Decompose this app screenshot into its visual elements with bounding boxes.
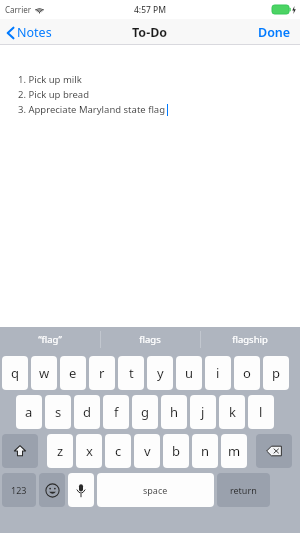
staticText: c [115,442,122,460]
staticText: 1. Pick up milk [18,73,82,86]
button[interactable]: Shift [2,434,38,468]
button[interactable]: y [147,356,173,390]
staticText: b [172,442,180,460]
staticText: j [201,403,205,421]
staticText: k [229,403,236,421]
staticText: “flag” [38,333,62,346]
staticText: d [83,403,91,421]
button[interactable]: x [76,434,102,468]
button[interactable]: b [163,434,189,468]
button[interactable]: z [47,434,73,468]
staticText: z [57,442,64,460]
button[interactable]: l [248,395,274,429]
staticText: r [99,364,105,382]
staticText: g [141,403,149,421]
button[interactable]: o [234,356,260,390]
button[interactable]: r [89,356,115,390]
staticText: Carrier [5,4,32,15]
button[interactable]: Dictation [68,473,94,507]
staticText: return [230,484,257,496]
button[interactable]: flagship [200,327,300,352]
staticText: q [11,364,19,382]
staticText: Notes [17,24,52,41]
button[interactable]: j [190,395,216,429]
button[interactable]: f [103,395,129,429]
button[interactable]: v [134,434,160,468]
staticText: l [259,403,263,421]
staticText: Done [258,24,291,41]
button[interactable]: m [221,434,247,468]
button[interactable]: d [74,395,100,429]
button[interactable]: a [16,395,42,429]
staticText: flagship [232,333,268,346]
button[interactable]: c [105,434,131,468]
button[interactable]: space [97,473,214,507]
staticText: y [157,364,164,382]
staticText: flags [139,333,161,346]
button[interactable]: return [217,473,270,507]
button[interactable]: p [263,356,289,390]
staticText: h [170,403,179,421]
button[interactable]: Emoji [39,473,65,507]
button[interactable]: k [219,395,245,429]
button[interactable]: q [2,356,28,390]
staticText: e [69,364,77,382]
staticText: s [55,403,62,421]
button[interactable]: i [205,356,231,390]
staticText: 2. Pick up bread [18,88,90,101]
staticText: 3. Appreciate Maryland state flag [18,103,166,116]
staticText: u [185,364,194,382]
button[interactable]: g [132,395,158,429]
staticText: x [86,442,93,460]
staticText: a [25,403,33,421]
staticText: 4:57 PM [134,4,167,16]
button[interactable]: Done [249,20,300,45]
button[interactable]: Backspace [256,434,292,468]
staticText: i [216,364,220,382]
button[interactable]: h [161,395,187,429]
staticText: o [243,364,251,382]
button[interactable]: 123 [2,473,36,507]
button[interactable]: n [192,434,218,468]
staticText: t [129,364,134,382]
button[interactable]: u [176,356,202,390]
staticText: f [114,403,119,421]
button[interactable]: e [60,356,86,390]
staticText: v [144,442,151,460]
staticText: 123 [11,484,27,496]
button[interactable]: w [31,356,57,390]
staticText: m [228,442,241,460]
button[interactable]: flags [100,327,200,352]
staticText: w [39,364,50,382]
button[interactable]: Notes [0,21,62,44]
button[interactable]: “flag” [0,327,100,352]
staticText: p [272,364,280,382]
staticText: space [143,484,168,496]
button[interactable]: t [118,356,144,390]
staticText: n [201,442,210,460]
staticText: To-Do [132,24,168,41]
button[interactable]: s [45,395,71,429]
